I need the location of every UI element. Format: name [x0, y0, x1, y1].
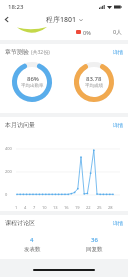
staticText: 86%: [27, 75, 39, 83]
staticText: 4: [24, 205, 27, 210]
staticText: 平均出勤率: [21, 83, 44, 89]
staticText: 1: [15, 205, 18, 210]
staticText: 200: [5, 169, 12, 174]
button[interactable]: 36: [74, 236, 114, 253]
staticText: 0: [5, 192, 8, 197]
staticText: 19: [75, 205, 80, 210]
staticText: 0%: [83, 29, 91, 36]
staticText: 课程讨论区: [5, 219, 35, 227]
staticText: 4: [30, 236, 34, 244]
button[interactable]: 详情: [113, 220, 123, 226]
staticText: 程序1801: [46, 15, 77, 25]
staticText: 83.78: [86, 75, 102, 83]
staticText: 13: [53, 205, 58, 210]
staticText: 10: [42, 205, 47, 210]
staticText: 16: [64, 205, 69, 210]
staticText: 回复数: [86, 246, 103, 253]
staticText: 28: [108, 205, 113, 210]
button[interactable]: 4: [12, 236, 52, 253]
staticText: 22: [86, 205, 91, 210]
staticText: 详情: [113, 49, 123, 55]
staticText: 25: [97, 205, 102, 210]
staticText: 36: [91, 236, 98, 244]
button[interactable]: 详情: [113, 49, 123, 55]
staticText: 7: [33, 205, 36, 210]
staticText: 详情: [113, 220, 123, 226]
staticText: 平均成绩: [85, 83, 103, 89]
staticText: (共32份): [31, 49, 50, 56]
staticText: 章节测验: [5, 48, 29, 56]
staticText: 本月访问量: [5, 121, 35, 129]
button[interactable]: 详情: [113, 122, 123, 128]
staticText: 详情: [113, 122, 123, 128]
staticText: 0人: [113, 28, 122, 36]
button[interactable]: Back: [0, 14, 14, 25]
staticText: 18:23: [8, 3, 24, 11]
staticText: 发表数: [24, 246, 41, 253]
button[interactable]: 程序1801: [46, 15, 83, 25]
staticText: 400: [5, 146, 12, 151]
